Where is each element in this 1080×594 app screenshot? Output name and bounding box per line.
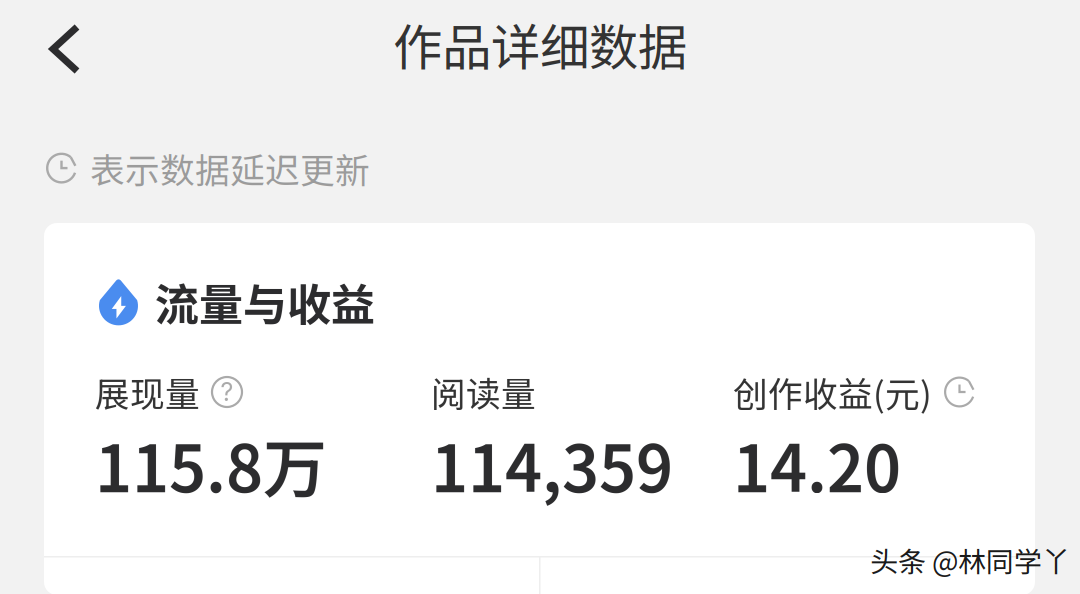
button[interactable]: 展现量 xyxy=(95,375,431,495)
staticText: 作品详细数据 xyxy=(393,8,687,80)
staticText: 115.8万 xyxy=(95,418,327,511)
staticText: 表示数据延迟更新 xyxy=(90,143,370,193)
staticText: 展现量 xyxy=(95,367,200,417)
button[interactable]: 阅读量 xyxy=(431,375,733,495)
button[interactable]: 创作收益(元) xyxy=(733,375,1033,495)
staticText: 阅读量 xyxy=(431,367,536,417)
button[interactable]: 关于展现量 xyxy=(212,377,242,407)
staticText: 14.20 xyxy=(733,418,901,511)
staticText: 114,359 xyxy=(431,418,673,511)
button[interactable]: Back xyxy=(22,13,108,85)
staticText: 头条 @林同学丫 xyxy=(870,540,1070,580)
staticText: 流量与收益 xyxy=(155,270,375,334)
staticText: 创作收益(元) xyxy=(733,367,932,417)
staticText: ? xyxy=(220,377,233,407)
